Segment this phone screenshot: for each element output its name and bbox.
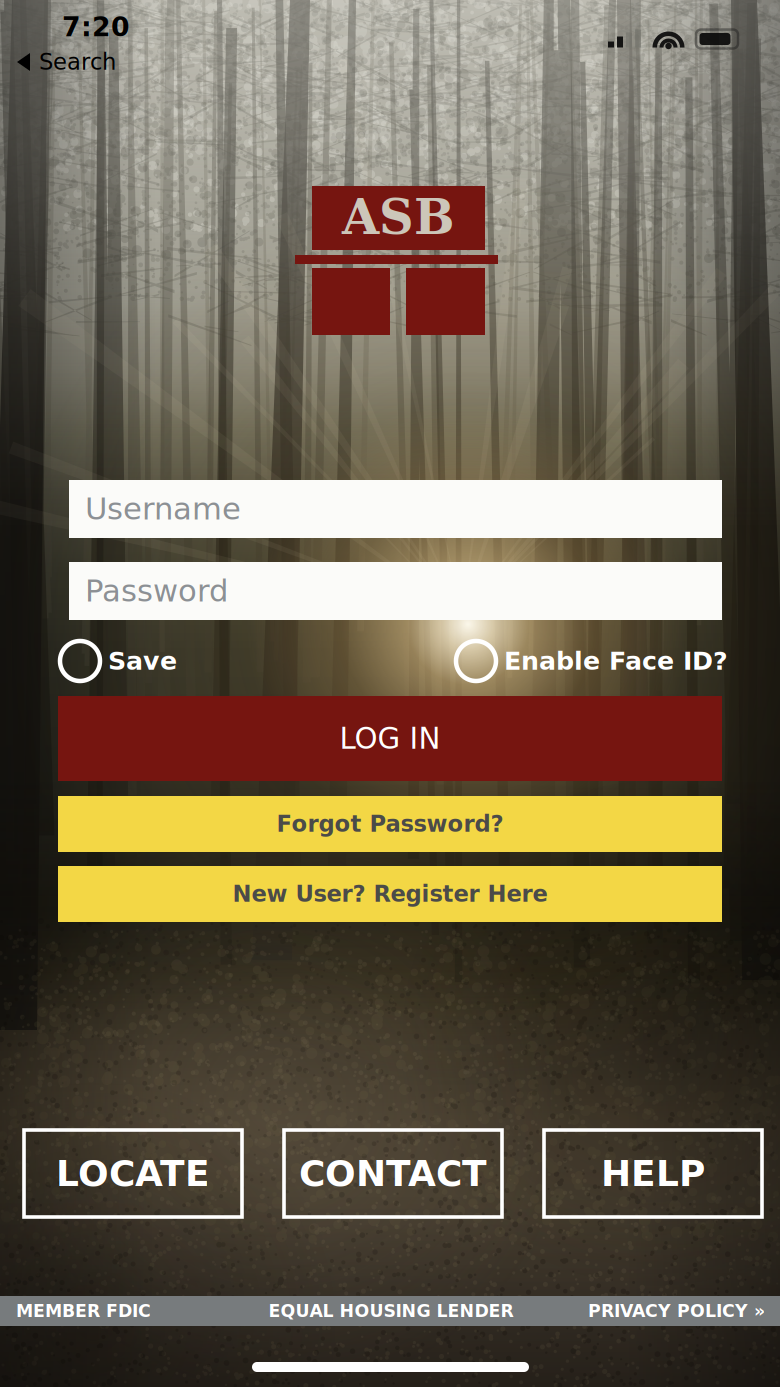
button[interactable]: Back to Search xyxy=(16,44,116,80)
button[interactable]: LOG IN xyxy=(58,696,722,781)
staticText: EQUAL HOUSING LENDER xyxy=(268,1301,513,1321)
button[interactable]: MEMBER FDIC xyxy=(16,1296,166,1326)
button[interactable]: EQUAL HOUSING LENDER xyxy=(261,1296,521,1326)
staticText: Search xyxy=(39,49,116,75)
staticText: MEMBER FDIC xyxy=(16,1301,151,1321)
staticText: Password xyxy=(85,573,228,609)
button[interactable]: HELP xyxy=(544,1130,762,1217)
staticText: HELP xyxy=(601,1152,705,1194)
button[interactable]: Enable Face ID? xyxy=(456,634,746,688)
staticText: Username xyxy=(85,491,241,527)
staticText: LOG IN xyxy=(339,721,440,755)
staticText: Save xyxy=(108,646,177,676)
staticText: CONTACT xyxy=(299,1152,487,1194)
button[interactable]: PRIVACY POLICY » xyxy=(575,1296,765,1326)
staticText: LOCATE xyxy=(56,1152,210,1194)
staticText: ASB xyxy=(342,189,455,245)
button[interactable]: Username xyxy=(69,480,722,538)
staticText: 7:20 xyxy=(62,11,130,42)
button[interactable]: LOCATE xyxy=(24,1130,242,1217)
staticText: New User? Register Here xyxy=(232,881,547,907)
button[interactable]: CONTACT xyxy=(284,1130,502,1217)
staticText: Forgot Password? xyxy=(276,811,503,837)
button[interactable]: Password xyxy=(69,562,722,620)
staticText: PRIVACY POLICY » xyxy=(588,1301,765,1321)
button[interactable]: Forgot Password? xyxy=(58,796,722,852)
button[interactable]: Save xyxy=(60,634,290,688)
staticText: Enable Face ID? xyxy=(504,646,728,676)
button[interactable]: New User? Register Here xyxy=(58,866,722,922)
